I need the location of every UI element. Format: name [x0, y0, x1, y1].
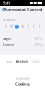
button[interactable]: M [9, 24, 13, 29]
staticText: Currently [16, 77, 29, 80]
staticText: F [33, 25, 34, 28]
staticText: Thermostat Control [3, 7, 42, 12]
staticText: M [10, 25, 12, 28]
staticText: S [5, 25, 6, 28]
button[interactable]: Cool [32, 60, 39, 63]
staticText: 9:41 [3, 0, 10, 6]
button[interactable]: Heat [5, 60, 11, 63]
staticText: SCHEDULE [3, 18, 15, 21]
staticText: 70° [34, 43, 39, 47]
staticText: Cooling [15, 81, 30, 86]
staticText: Current [3, 43, 14, 47]
staticText: T [28, 25, 29, 28]
button[interactable]: S [3, 24, 8, 29]
staticText: Target [3, 37, 11, 41]
button[interactable]: Target [0, 36, 45, 42]
staticText: S [39, 25, 40, 28]
button[interactable]: W [20, 24, 25, 29]
button[interactable]: S [37, 24, 41, 29]
button[interactable]: Back [0, 6, 7, 12]
staticText: Cool [32, 60, 39, 63]
button[interactable]: Schedule [15, 60, 28, 63]
staticText: T [16, 25, 18, 28]
staticText: 72° [34, 37, 39, 41]
staticText: W [21, 25, 23, 28]
staticText: Heat [5, 60, 11, 63]
staticText: Schedule [15, 60, 28, 63]
button[interactable]: T [15, 24, 19, 29]
button[interactable]: Current [0, 42, 45, 48]
button[interactable]: F [31, 24, 36, 29]
button[interactable]: T [26, 24, 30, 29]
